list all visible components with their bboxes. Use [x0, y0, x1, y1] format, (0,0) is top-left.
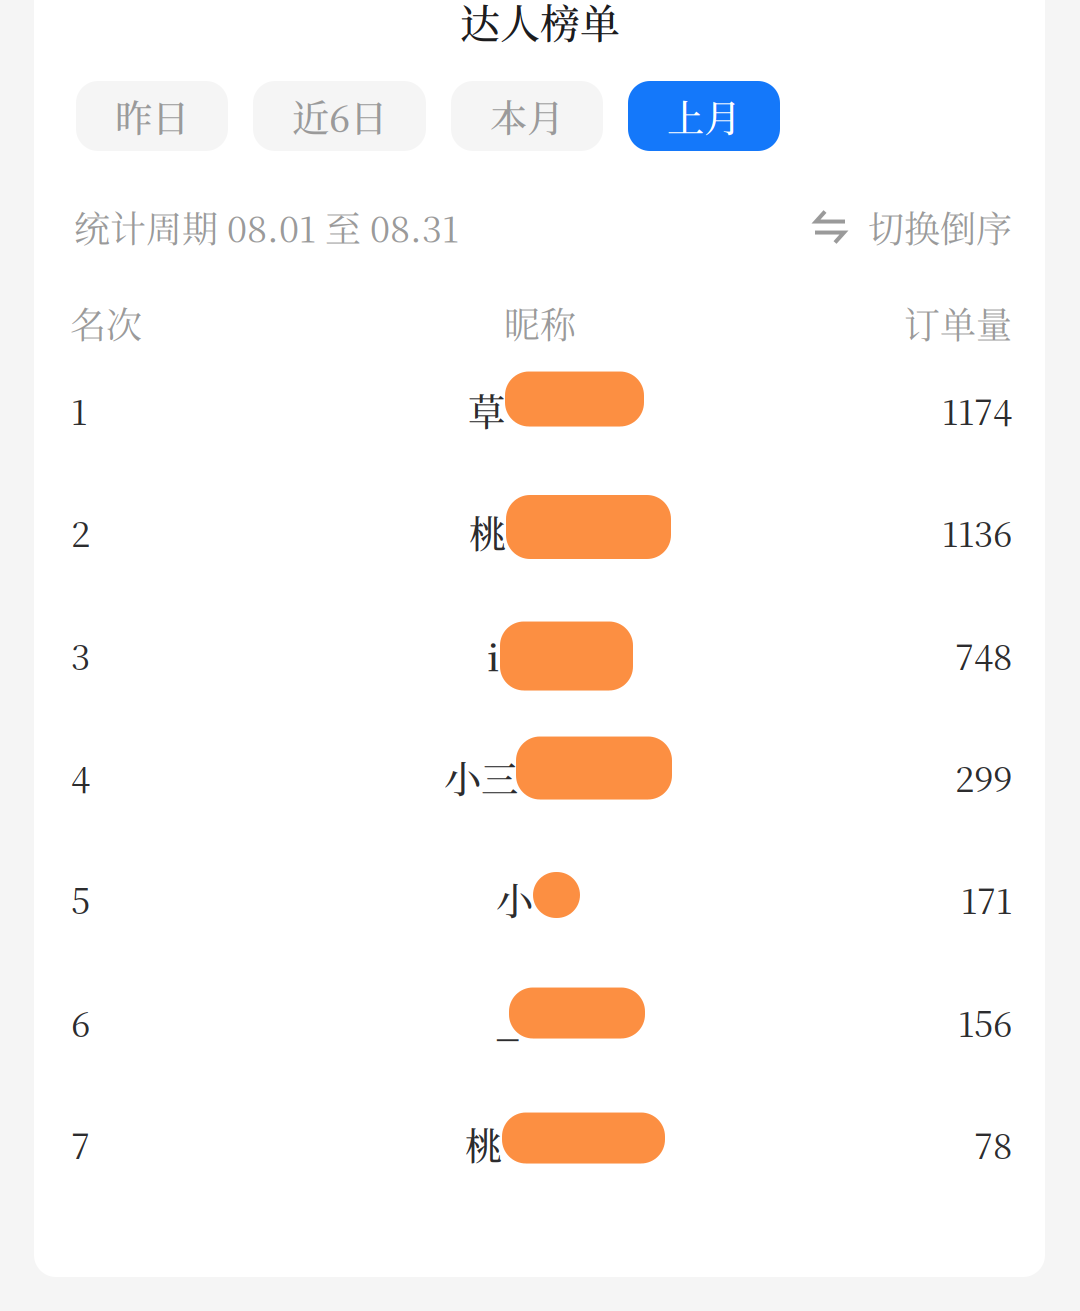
staticText: _: [497, 995, 518, 1049]
staticText: 桃: [465, 1117, 502, 1171]
staticText: i: [487, 628, 500, 682]
button[interactable]: 本月: [451, 81, 603, 151]
staticText: 78: [974, 1119, 1012, 1169]
staticText: 171: [961, 874, 1012, 924]
staticText: 昵称: [504, 297, 576, 349]
staticText: 草: [468, 383, 505, 437]
staticText: 昨日: [115, 89, 189, 143]
staticText: 名次: [70, 297, 142, 349]
staticText: 2: [71, 507, 90, 557]
staticText: 4: [71, 752, 90, 802]
staticText: 达人榜单: [460, 0, 620, 50]
staticText: 1174: [942, 385, 1012, 435]
staticText: 订单量: [904, 297, 1012, 349]
button[interactable]: 近6日: [253, 81, 426, 151]
staticText: 3: [71, 630, 90, 680]
staticText: 748: [955, 630, 1012, 680]
staticText: 1: [71, 385, 87, 435]
staticText: 小: [496, 872, 533, 926]
staticText: 切换倒序: [868, 201, 1012, 253]
staticText: 5: [71, 874, 90, 924]
staticText: 小三: [444, 750, 518, 804]
button[interactable]: 上月: [628, 81, 780, 151]
staticText: 299: [955, 752, 1012, 802]
staticText: 7: [71, 1119, 90, 1169]
staticText: 近6日: [292, 89, 387, 143]
staticText: 156: [958, 997, 1012, 1047]
button[interactable]: 昨日: [76, 81, 228, 151]
staticText: 统计周期 08.01 至 08.31: [74, 201, 459, 253]
staticText: 上月: [667, 89, 741, 143]
staticText: 1136: [942, 507, 1012, 557]
staticText: 本月: [490, 89, 564, 143]
button[interactable]: 切换倒序: [814, 195, 1012, 259]
staticText: 6: [71, 997, 90, 1047]
staticText: 桃: [469, 505, 506, 559]
